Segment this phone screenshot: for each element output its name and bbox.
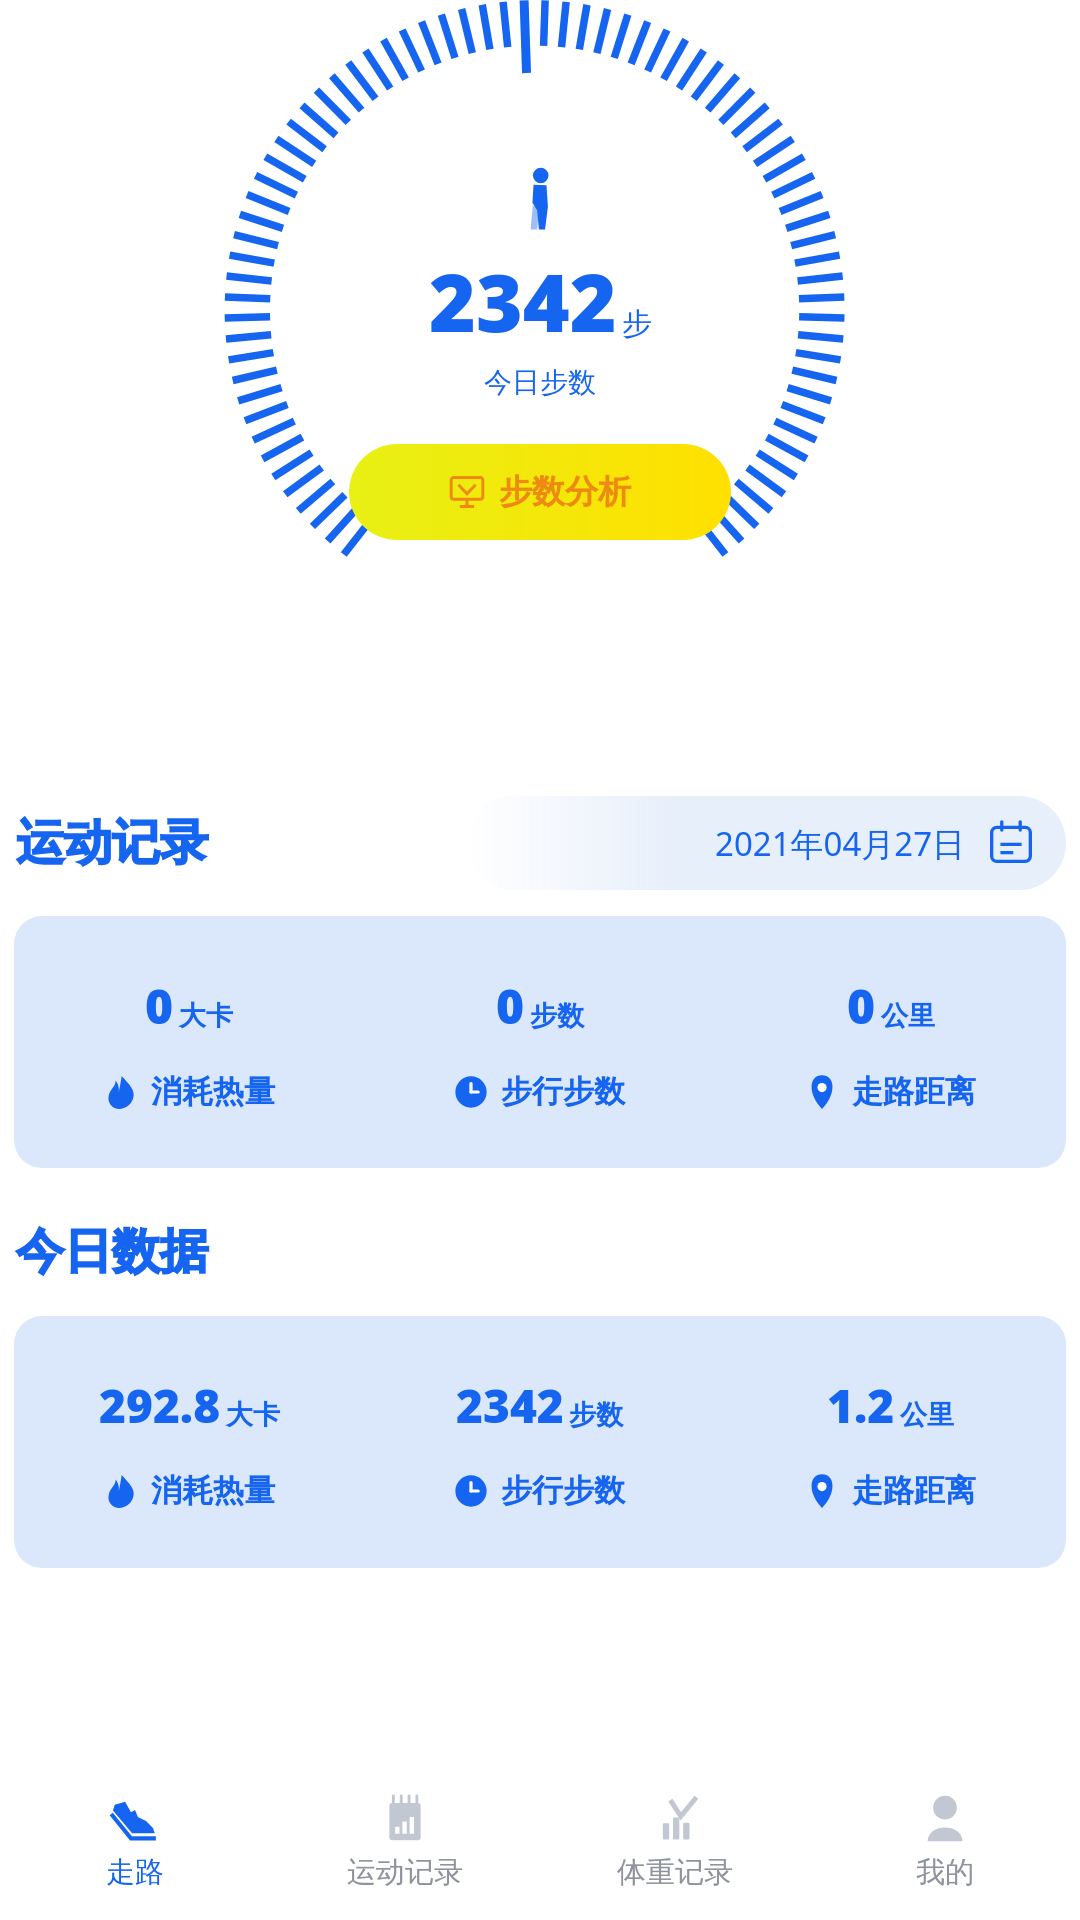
staticText: 今日步数 [484, 365, 596, 400]
staticText: 运动记录 [16, 813, 208, 873]
staticText: 我的 [916, 1854, 974, 1891]
button[interactable]: 2021年04月27日 [466, 796, 1066, 890]
staticText: 体重记录 [617, 1854, 733, 1891]
staticText: 步数 [530, 999, 584, 1033]
staticText: 2342 [456, 1374, 564, 1437]
staticText: 今日数据 [16, 1222, 208, 1282]
staticText: 0 [145, 973, 174, 1038]
staticText: 走路 [106, 1854, 164, 1891]
staticText: 步 [622, 305, 652, 343]
button[interactable]: 我的 [810, 1778, 1080, 1920]
staticText: 1.2 [827, 1374, 895, 1437]
staticText: 步行步数 [501, 1072, 625, 1111]
staticText: 292.8 [99, 1374, 221, 1437]
staticText: 公里 [881, 999, 935, 1033]
staticText: 公里 [900, 1398, 954, 1432]
staticText: 2342 [429, 246, 617, 355]
button[interactable]: 体重记录 [540, 1778, 810, 1920]
staticText: 大卡 [179, 999, 233, 1033]
button[interactable]: 运动记录 [270, 1778, 540, 1920]
staticText: 消耗热量 [151, 1471, 275, 1510]
other: Pick date [988, 820, 1034, 866]
staticText: 步数 [569, 1398, 623, 1432]
staticText: 运动记录 [347, 1854, 463, 1891]
button[interactable]: 0 [14, 916, 1066, 1168]
staticText: 步行步数 [501, 1471, 625, 1510]
staticText: 0 [496, 973, 525, 1038]
staticText: 消耗热量 [151, 1072, 275, 1111]
staticText: 大卡 [226, 1398, 280, 1432]
staticText: 步数分析 [499, 471, 631, 513]
staticText: 2021年04月27日 [715, 821, 966, 866]
staticText: 0 [847, 973, 876, 1038]
button[interactable]: 292.8 [14, 1316, 1066, 1568]
other: Walking [522, 168, 558, 230]
staticText: 走路距离 [852, 1471, 976, 1510]
button[interactable]: 步数分析 [349, 444, 731, 540]
button[interactable]: 走路 [0, 1778, 270, 1920]
staticText: 走路距离 [852, 1072, 976, 1111]
